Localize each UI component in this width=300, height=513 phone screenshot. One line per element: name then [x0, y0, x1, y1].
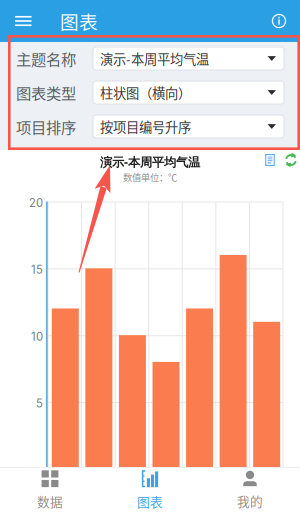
staticText: 图表类型	[16, 81, 76, 104]
button[interactable]: 柱状图（横向）	[93, 81, 284, 104]
button[interactable]: 我的	[200, 467, 300, 513]
button[interactable]: Refresh	[284, 153, 298, 167]
staticText: 项目排序	[16, 115, 76, 138]
staticText: 15	[31, 263, 43, 277]
button[interactable]: Information	[264, 0, 294, 42]
staticText: 图表	[60, 7, 98, 34]
button[interactable]: 数据	[0, 467, 100, 513]
button[interactable]: Table view	[263, 153, 277, 167]
staticText: 数据	[37, 492, 63, 510]
button[interactable]: 演示-本周平均气温	[93, 47, 284, 70]
staticText: 5	[36, 396, 43, 410]
staticText: 演示-本周平均气温	[100, 49, 209, 68]
button[interactable]: 按项目编号升序	[93, 115, 284, 138]
staticText: 图表	[137, 492, 163, 510]
staticText: 我的	[237, 492, 263, 510]
staticText: 演示-本周平均气温	[100, 154, 200, 170]
button[interactable]: Menu	[8, 0, 39, 42]
button[interactable]: 图表	[100, 467, 200, 513]
staticText: 柱状图（横向）	[100, 83, 191, 102]
staticText: 10	[31, 330, 43, 343]
staticText: 主题名称	[16, 47, 76, 70]
staticText: 20	[29, 196, 43, 210]
staticText: 按项目编号升序	[100, 117, 191, 136]
staticText: 数值单位：℃	[123, 170, 177, 184]
